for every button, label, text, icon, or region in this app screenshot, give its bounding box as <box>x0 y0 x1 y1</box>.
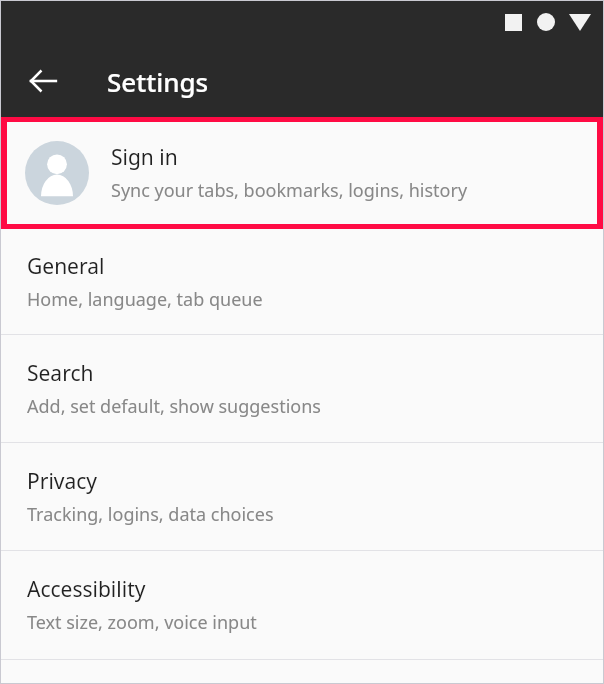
button[interactable]: Search <box>1 335 603 442</box>
button[interactable]: Privacy <box>1 443 603 550</box>
staticText: Accessibility <box>27 575 146 604</box>
staticText: Settings <box>107 64 209 99</box>
staticText: General <box>27 252 105 281</box>
button[interactable]: General <box>1 229 603 334</box>
staticText: Sign in <box>111 143 178 172</box>
staticText: Tracking, logins, data choices <box>27 502 274 527</box>
staticText: Privacy <box>27 467 98 496</box>
staticText: Text size, zoom, voice input <box>27 610 257 635</box>
button[interactable]: Sign in <box>7 122 597 224</box>
staticText: Add, set default, show suggestions <box>27 394 321 419</box>
staticText: Sync your tabs, bookmarks, logins, histo… <box>111 178 468 203</box>
staticText: Home, language, tab queue <box>27 287 263 312</box>
staticText: Search <box>27 359 94 388</box>
button[interactable]: Back <box>17 55 69 107</box>
button[interactable]: Accessibility <box>1 551 603 659</box>
